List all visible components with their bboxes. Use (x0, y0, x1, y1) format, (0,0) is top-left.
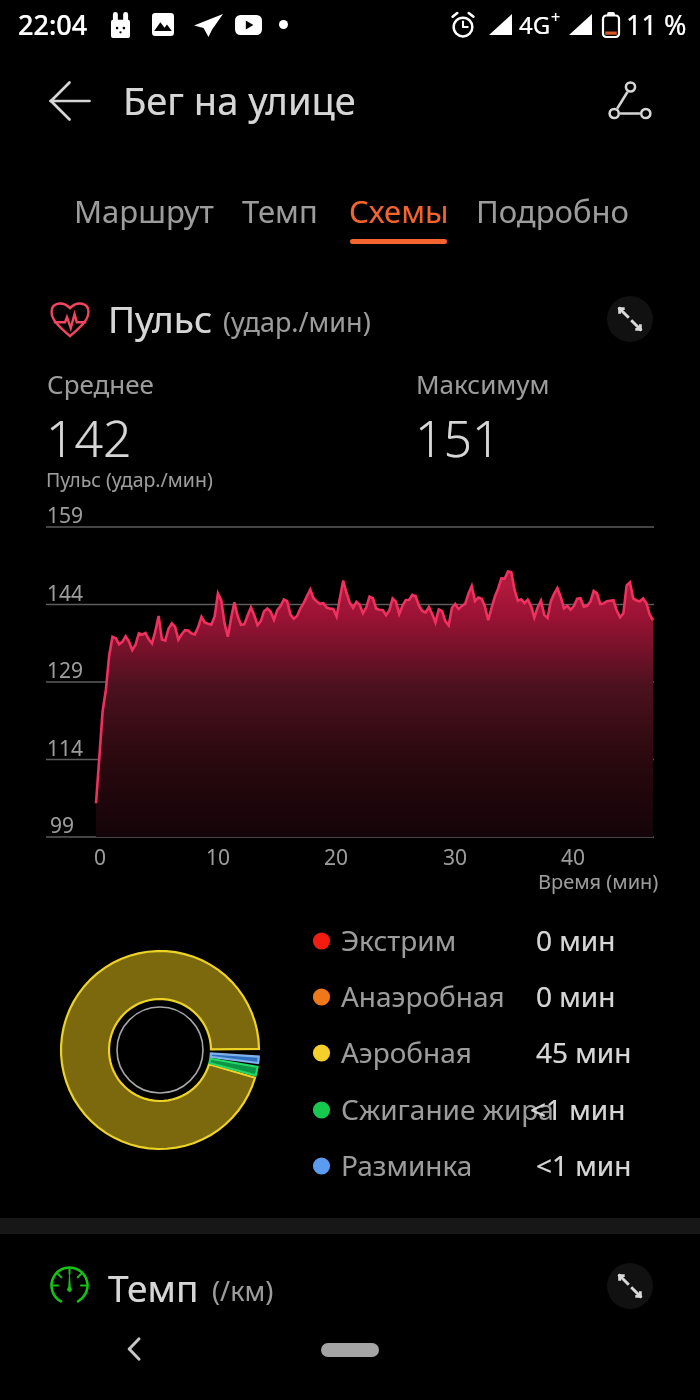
staticText: 99 (50, 811, 75, 840)
staticText: 20 (324, 843, 349, 872)
staticText: 151 (415, 404, 501, 472)
staticText: 144 (47, 579, 84, 608)
staticText: 114 (47, 734, 84, 763)
staticText: 30 (443, 843, 468, 872)
button[interactable]: Аэробная (308, 1025, 638, 1081)
staticText: 4G (519, 8, 551, 41)
button[interactable]: Подробно (465, 186, 640, 244)
button[interactable]: Экстрим (308, 913, 638, 969)
staticText: Сжигание жира (341, 1090, 554, 1128)
staticText: Маршрут (74, 190, 215, 232)
staticText: Время (мин) (538, 868, 659, 895)
staticText: 0 (94, 843, 107, 872)
staticText: 10 (206, 843, 231, 872)
button[interactable]: Сжигание жира (308, 1082, 638, 1138)
staticText: 0 мин (536, 977, 616, 1015)
staticText: Пульс (удар./мин) (46, 466, 213, 493)
staticText: 0 мин (536, 921, 616, 959)
button[interactable]: Разминка (308, 1138, 638, 1194)
button[interactable]: Expand heart rate chart (607, 296, 653, 342)
staticText: + (551, 6, 561, 28)
button[interactable]: Темп (228, 186, 331, 244)
staticText: Бег на улице (123, 74, 356, 126)
staticText: Темп (108, 1262, 199, 1312)
staticText: Разминка (341, 1146, 473, 1184)
button[interactable]: Маршрут (64, 186, 224, 244)
staticText: Среднее (47, 366, 154, 401)
staticText: <1 мин (536, 1146, 632, 1184)
staticText: Аэробная (341, 1033, 472, 1071)
staticText: (удар./мин) (223, 303, 371, 340)
staticText: <1 мин (530, 1090, 626, 1128)
staticText: 142 (46, 404, 132, 472)
button[interactable]: Expand pace chart (607, 1263, 653, 1309)
button[interactable]: Анаэробная (308, 969, 638, 1025)
staticText: Максимум (416, 366, 550, 401)
button[interactable]: Схемы (336, 186, 461, 244)
button[interactable]: Back (118, 1332, 152, 1366)
staticText: 22:04 (18, 6, 88, 43)
staticText: Схемы (349, 190, 449, 232)
button[interactable]: Home (321, 1343, 379, 1357)
staticText: 159 (47, 501, 84, 530)
staticText: 45 мин (536, 1033, 632, 1071)
staticText: Пульс (108, 293, 213, 343)
staticText: 129 (47, 656, 84, 685)
staticText: Темп (242, 190, 318, 232)
staticText: Анаэробная (341, 977, 505, 1015)
staticText: Экстрим (341, 921, 457, 959)
staticText: 11 % (626, 6, 687, 43)
staticText: 40 (561, 843, 586, 872)
staticText: (/км) (212, 1272, 274, 1309)
button[interactable]: Back (40, 71, 100, 131)
button[interactable]: Share (600, 74, 652, 126)
staticText: Подробно (476, 190, 629, 232)
